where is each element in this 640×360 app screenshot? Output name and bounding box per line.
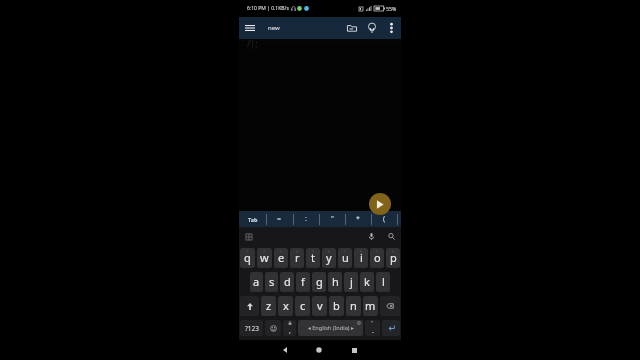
button[interactable]: * [345, 211, 371, 227]
button[interactable]: Open folder [342, 17, 361, 39]
button[interactable]: h [328, 272, 342, 292]
staticText: i [360, 250, 363, 265]
button[interactable]: 5 [306, 248, 320, 268]
button[interactable]: 0 [386, 248, 400, 268]
staticText: 55% [386, 5, 397, 12]
staticText: k [364, 274, 370, 289]
button[interactable]: v [312, 296, 327, 316]
button[interactable]: k [360, 272, 374, 292]
staticText: " [331, 214, 334, 224]
button[interactable]: Recent apps [347, 343, 361, 357]
staticText: 6 [328, 249, 331, 254]
staticText: g [316, 274, 323, 289]
button[interactable]: Shift [240, 296, 259, 316]
button[interactable]: Backspace [380, 296, 400, 316]
button[interactable]: Voice input [366, 231, 377, 242]
staticText: 6:10 PM | 0.1KB/s [247, 5, 289, 12]
staticText: d [284, 274, 291, 289]
staticText: c [300, 298, 306, 313]
button[interactable]: ( [371, 211, 397, 227]
button[interactable]: n [346, 296, 361, 316]
staticText: b [333, 298, 340, 313]
staticText: q [244, 250, 251, 265]
button[interactable]: Enter [382, 320, 400, 336]
staticText: j [350, 274, 353, 289]
button[interactable]: g [312, 272, 326, 292]
button[interactable]: x [278, 296, 293, 316]
staticText: 3 [280, 249, 283, 254]
staticText: u [342, 250, 349, 265]
staticText: , [289, 326, 291, 336]
staticText: v [317, 298, 323, 313]
staticText: 2 [263, 249, 266, 254]
staticText: m [365, 298, 376, 313]
button[interactable]: More options [382, 17, 401, 39]
button[interactable]: d [280, 272, 294, 292]
button[interactable]: z [261, 296, 276, 316]
staticText: ?123 [245, 324, 259, 333]
button[interactable]: m [363, 296, 378, 316]
button[interactable]: 7 [338, 248, 352, 268]
button[interactable]: b [329, 296, 344, 316]
button[interactable]: Run [369, 193, 391, 215]
staticText: h [332, 274, 339, 289]
staticText: ◂ English (India) ▸ [308, 324, 354, 332]
button[interactable]: l [376, 272, 390, 292]
staticText: new [268, 24, 280, 32]
button[interactable]: Tab [239, 211, 266, 227]
staticText: ( [383, 214, 386, 224]
staticText: r [295, 250, 300, 265]
staticText: z [266, 298, 272, 313]
staticText: : [305, 214, 307, 224]
staticText: t [311, 250, 315, 265]
button[interactable]: Navigation menu [239, 17, 260, 39]
button[interactable]: 4 [290, 248, 304, 268]
staticText: 1 [246, 249, 249, 254]
button[interactable]: ?123 [240, 320, 263, 336]
button[interactable]: = [266, 211, 293, 227]
button[interactable]: 3 [274, 248, 288, 268]
button[interactable]: s [265, 272, 278, 292]
staticText: l [382, 274, 385, 289]
staticText: 9 [376, 249, 379, 254]
button[interactable]: Back [278, 343, 292, 357]
staticText: * [356, 214, 360, 224]
button[interactable]: j [344, 272, 358, 292]
button[interactable]: 2 [257, 248, 272, 268]
button[interactable]: Clipboard [243, 231, 254, 242]
button[interactable]: Home [312, 343, 326, 357]
staticText: /|; [247, 37, 258, 49]
button[interactable]: 8 [354, 248, 368, 268]
button[interactable]: a [250, 272, 263, 292]
staticText: e [278, 250, 285, 265]
staticText: 7 [344, 249, 347, 254]
staticText: a [253, 274, 260, 289]
staticText: . [372, 326, 374, 336]
button[interactable]: 1 [240, 248, 255, 268]
button[interactable]: 6 [322, 248, 336, 268]
button[interactable]: Period [365, 320, 380, 336]
staticText: 5 [312, 249, 315, 254]
staticText: s [269, 274, 275, 289]
staticText: o [374, 250, 381, 265]
button[interactable]: : [293, 211, 319, 227]
button[interactable]: 9 [370, 248, 384, 268]
button[interactable]: Comma [283, 320, 296, 336]
button[interactable]: ◂ English (India) ▸ [298, 320, 363, 336]
staticText: f [301, 274, 305, 289]
button[interactable]: Emoji [265, 320, 281, 336]
button[interactable]: f [296, 272, 310, 292]
staticText: y [326, 250, 332, 265]
staticText: x [283, 298, 289, 313]
staticText: = [277, 214, 282, 224]
staticText: w [260, 250, 269, 265]
staticText: 0 [392, 249, 395, 254]
staticText: 4 [296, 249, 299, 254]
staticText: n [350, 298, 357, 313]
button[interactable]: Hint [361, 17, 382, 39]
button[interactable]: Search [386, 231, 397, 242]
staticText: 8 [360, 249, 363, 254]
button[interactable]: " [319, 211, 345, 227]
staticText: Tab [248, 216, 258, 223]
button[interactable]: c [295, 296, 310, 316]
